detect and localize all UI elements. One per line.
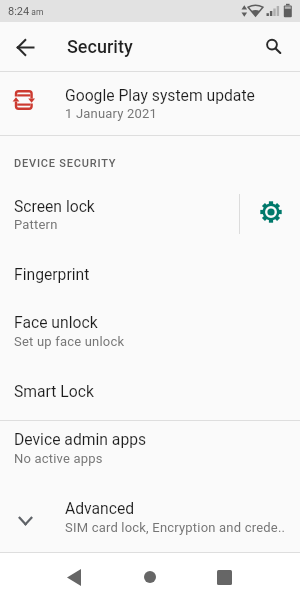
button[interactable]: Screen lock (0, 181, 239, 247)
staticText: DEVICE SECURITY (14, 157, 117, 170)
button[interactable] (9, 31, 41, 63)
staticText: Screen lock (14, 197, 95, 215)
button[interactable]: Advanced (0, 486, 300, 552)
staticText: Fingerprint (14, 265, 90, 283)
button[interactable]: Face unlock (0, 300, 300, 361)
staticText: Smart Lock (14, 382, 94, 400)
button[interactable] (259, 32, 289, 62)
button[interactable]: Smart Lock (0, 361, 300, 420)
staticText: SIM card lock, Encryption and crede.. (65, 520, 286, 535)
staticText: Pattern (14, 217, 58, 232)
staticText: No active apps (14, 451, 103, 466)
staticText: Face unlock (14, 313, 98, 331)
button[interactable]: Device admin apps (0, 421, 300, 486)
button[interactable] (208, 561, 240, 593)
staticText: Security (67, 36, 133, 57)
button[interactable] (240, 181, 300, 247)
button[interactable]: Fingerprint (0, 247, 300, 300)
staticText: 8:24 am (8, 5, 44, 18)
staticText: Google Play system update (65, 86, 255, 104)
button[interactable]: Google Play system update (0, 72, 300, 135)
staticText: Set up face unlock (14, 334, 125, 349)
staticText: Device admin apps (14, 430, 147, 448)
button[interactable] (134, 561, 166, 593)
staticText: Advanced (65, 499, 135, 517)
button[interactable] (58, 561, 90, 593)
staticText: 1 January 2021 (65, 106, 158, 121)
